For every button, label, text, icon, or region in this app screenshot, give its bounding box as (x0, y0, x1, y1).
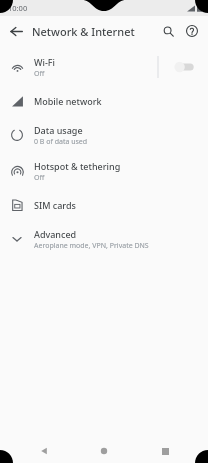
button[interactable]: Data usage (0, 117, 208, 153)
button[interactable]: Wi-Fi (0, 49, 208, 85)
button[interactable]: Home (87, 439, 121, 463)
staticText: Mobile network (34, 95, 102, 107)
staticText: 10:00 (8, 3, 28, 13)
staticText: Off (34, 69, 45, 79)
button[interactable]: Hotspot (0, 153, 208, 189)
staticText: Wi-Fi (34, 56, 55, 68)
button[interactable]: Help (180, 19, 204, 43)
button[interactable]: Search (156, 19, 180, 43)
staticText: SIM cards (34, 199, 76, 211)
staticText: Network & Internet (32, 24, 135, 39)
button[interactable]: Wi-Fi toggle (162, 50, 206, 84)
button[interactable]: Recent apps (148, 439, 182, 463)
staticText: Advanced (34, 228, 77, 240)
staticText: 0 B of data used (34, 137, 88, 147)
button[interactable]: Back (27, 439, 61, 463)
button[interactable]: Advanced (0, 221, 208, 257)
staticText: Hotspot & tethering (34, 160, 121, 172)
button[interactable]: Back (4, 19, 28, 43)
staticText: Data usage (34, 124, 83, 136)
staticText: Aeroplane mode, VPN, Private DNS (34, 241, 149, 251)
button[interactable]: SIM cards (0, 189, 208, 221)
staticText: Off (34, 173, 45, 183)
button[interactable]: Mobile network (0, 85, 208, 117)
